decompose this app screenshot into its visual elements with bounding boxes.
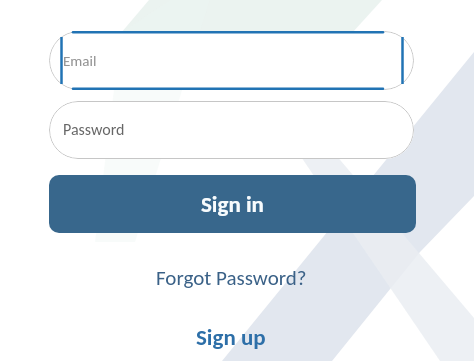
button[interactable]: Sign in [49,175,416,233]
button[interactable]: Password [49,101,414,159]
staticText: Sign in [201,190,264,218]
button[interactable]: Email [49,31,414,90]
button[interactable]: Forgot Password? [156,265,307,291]
staticText: Email [63,52,97,70]
button[interactable]: Sign up [196,323,266,351]
staticText: Password [63,120,125,140]
